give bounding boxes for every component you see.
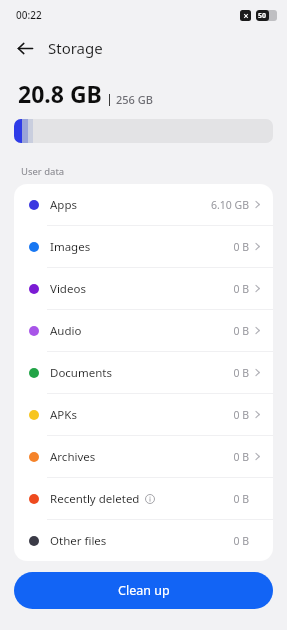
staticText: Videos (50, 281, 86, 297)
button[interactable]: Archives (14, 436, 273, 477)
staticText: APKs (50, 407, 77, 423)
button[interactable]: Other files (14, 520, 273, 561)
button[interactable]: APKs (14, 394, 273, 435)
staticText: Images (50, 239, 91, 255)
button[interactable]: Images (14, 226, 273, 267)
staticText: Apps (50, 197, 78, 213)
staticText: 256 GB (116, 92, 153, 107)
staticText: 0 B (233, 282, 249, 296)
button[interactable]: Apps (14, 184, 273, 225)
staticText: Clean up (118, 582, 170, 599)
button[interactable]: Recently deleted (14, 478, 273, 519)
staticText: 0 B (233, 492, 249, 506)
staticText: 0 B (233, 324, 249, 338)
staticText: 0 B (233, 450, 249, 464)
button[interactable]: Audio (14, 310, 273, 351)
staticText: User data (21, 165, 65, 178)
staticText: Audio (50, 323, 82, 339)
staticText: 00:22 (16, 8, 42, 22)
button[interactable]: Back (10, 33, 40, 63)
staticText: Archives (50, 449, 96, 465)
staticText: 20.8 GB (18, 78, 102, 109)
staticText: 0 B (233, 240, 249, 254)
staticText: 50 (258, 11, 267, 21)
button[interactable]: Videos (14, 268, 273, 309)
staticText: Recently deleted (50, 491, 140, 507)
staticText: 6.10 GB (210, 198, 249, 212)
staticText: 0 B (233, 366, 249, 380)
button[interactable]: Documents (14, 352, 273, 393)
button[interactable]: Clean up (14, 572, 273, 609)
staticText: 0 B (233, 408, 249, 422)
staticText: Other files (50, 533, 107, 549)
staticText: Storage (48, 38, 103, 58)
staticText: 0 B (233, 534, 249, 548)
staticText: Documents (50, 365, 112, 381)
